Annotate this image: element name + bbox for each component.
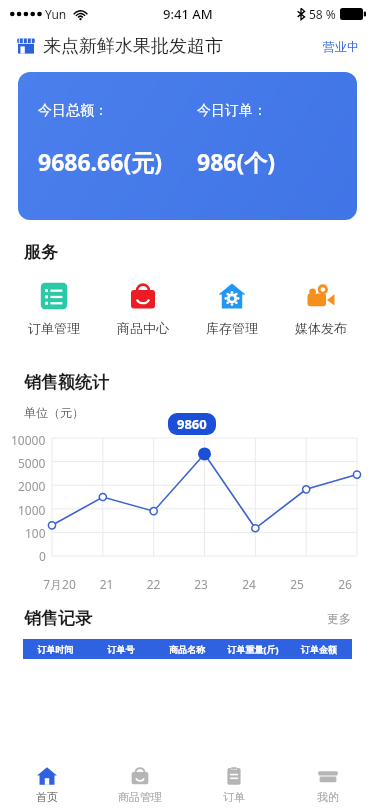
- staticText: 9860: [177, 415, 207, 433]
- staticText: 7月20: [36, 576, 83, 592]
- staticText: 单位（元）: [24, 405, 84, 420]
- staticText: 9686.66(元): [38, 146, 162, 177]
- staticText: 2000: [18, 478, 46, 494]
- staticText: 今日订单：: [197, 102, 267, 120]
- staticText: 商品中心: [117, 320, 169, 336]
- staticText: 26: [321, 576, 369, 592]
- button[interactable]: 商品中心: [98, 277, 187, 340]
- staticText: 库存管理: [206, 320, 258, 336]
- staticText: 25: [273, 576, 321, 592]
- staticText: 22: [130, 576, 177, 592]
- button[interactable]: 库存管理: [187, 277, 276, 340]
- staticText: 21: [83, 576, 130, 592]
- button[interactable]: 媒体发布: [276, 277, 365, 340]
- staticText: 商品名称: [154, 644, 220, 655]
- staticText: 销售额统计: [24, 372, 109, 393]
- staticText: 订单: [223, 790, 245, 804]
- staticText: 服务: [24, 242, 58, 263]
- staticText: 媒体发布: [295, 320, 347, 336]
- staticText: 23: [177, 576, 225, 592]
- staticText: 100: [25, 525, 46, 541]
- button[interactable]: 我的: [281, 758, 375, 812]
- staticText: 986(个): [197, 146, 276, 177]
- staticText: 1000: [18, 502, 46, 518]
- button[interactable]: 订单管理: [10, 277, 98, 340]
- staticText: 来点新鲜水果批发超市: [43, 35, 223, 58]
- staticText: 更多: [327, 611, 351, 626]
- staticText: 商品管理: [118, 790, 162, 804]
- staticText: 10000: [11, 432, 46, 448]
- button[interactable]: 订单: [187, 758, 281, 812]
- staticText: 销售记录: [24, 608, 92, 629]
- button[interactable]: 营业中: [323, 39, 359, 54]
- staticText: 58 %: [309, 6, 336, 22]
- button[interactable]: 商品管理: [93, 758, 187, 812]
- staticText: 订单管理: [28, 320, 80, 336]
- staticText: 订单号: [88, 644, 154, 655]
- button[interactable]: 更多: [327, 611, 351, 626]
- staticText: 今日总额：: [38, 102, 108, 120]
- staticText: 5000: [18, 455, 46, 471]
- staticText: 订单重量(斤): [220, 643, 286, 655]
- staticText: 0: [39, 548, 46, 564]
- staticText: 首页: [36, 790, 58, 804]
- staticText: Yun: [45, 6, 67, 22]
- staticText: 订单金额: [286, 644, 352, 655]
- staticText: 我的: [317, 790, 339, 804]
- staticText: 9:41 AM: [163, 5, 213, 23]
- button[interactable]: 首页: [0, 758, 93, 812]
- button[interactable]: 今日总额：: [18, 72, 357, 220]
- staticText: 订单时间: [23, 644, 88, 655]
- staticText: 营业中: [323, 39, 359, 54]
- staticText: 24: [225, 576, 273, 592]
